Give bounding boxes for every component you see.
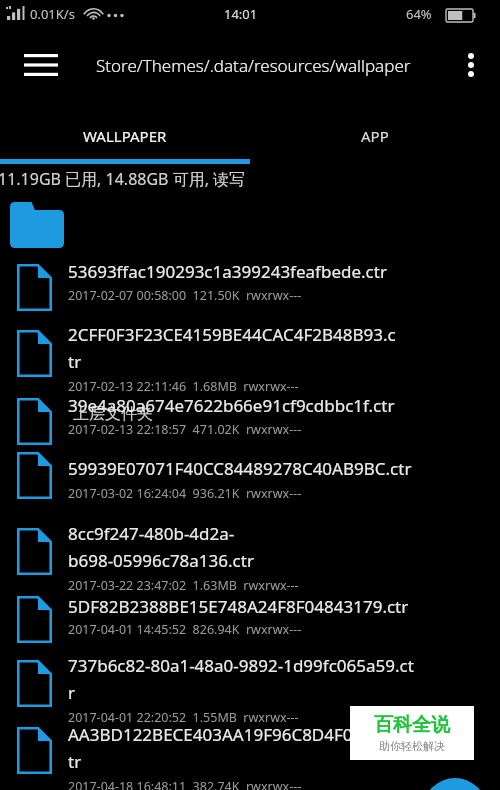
button[interactable]: APP (250, 112, 500, 160)
staticText: 2017-03-02 16:24:04 936.21K rwxrwx--- (68, 485, 302, 502)
staticText: 2017-03-22 23:47:02 1.63MB rwxrwx--- (68, 577, 299, 594)
staticText: 2017-04-18 16:48:11 382.74K rwxrwx--- (68, 778, 302, 790)
staticText: 2017-04-01 22:20:52 1.55MB rwxrwx--- (68, 709, 299, 726)
button[interactable]: Add (423, 778, 487, 790)
staticText: 助你轻松解决 (379, 739, 445, 753)
staticText: tr (68, 350, 82, 373)
staticText: 59939E07071F40CC84489278C40AB9BC.ctr (68, 457, 412, 480)
staticText: 11.19GB 已用, 14.88GB 可用, 读写 (0, 168, 246, 190)
staticText: b698-05996c78a136.ctr (68, 549, 254, 572)
button[interactable]: .. (0, 190, 500, 252)
staticText: 53693ffac190293c1a399243feafbede.ctr (68, 260, 387, 283)
staticText: .. (73, 392, 80, 410)
staticText: WALLPAPER (83, 126, 167, 146)
button[interactable] (0, 392, 500, 446)
staticText: 百科全说 (374, 713, 450, 737)
button[interactable]: Store/Themes/.data/resources/wallpaper (96, 44, 446, 86)
staticText: 64% (406, 5, 432, 23)
staticText: 上层文件夹 (73, 404, 153, 424)
staticText: tr (68, 750, 82, 773)
button[interactable]: Open navigation drawer (10, 42, 72, 88)
button[interactable] (0, 590, 500, 644)
staticText: 14:01 (224, 5, 258, 23)
staticText: 0.01K/s (30, 5, 75, 23)
staticText: 5DF82B2388BE15E748A24F8F04843179.ctr (68, 595, 409, 618)
button[interactable] (0, 654, 500, 708)
button[interactable] (0, 258, 500, 312)
button[interactable]: More options (448, 42, 494, 88)
staticText: AA3BD122BECE403AA19F96C8D4F0D4E7.c (68, 723, 407, 746)
staticText: 2CFF0F3F23CE4159BE44CAC4F2B48B93.c (68, 323, 396, 346)
staticText: 39e4a80a674e7622b66e91cf9cdbbc1f.ctr (68, 394, 395, 417)
staticText: 2017-02-07 00:58:00 121.50K rwxrwx--- (68, 287, 302, 304)
staticText: r (68, 681, 76, 704)
staticText: Store/Themes/.data/resources/wallpaper (96, 54, 411, 77)
staticText: 8cc9f247-480b-4d2a- (68, 522, 235, 545)
button[interactable] (0, 446, 500, 500)
button[interactable]: WALLPAPER (0, 112, 250, 160)
staticText: 2017-02-13 22:11:46 1.68MB rwxrwx--- (68, 378, 299, 395)
button[interactable] (0, 324, 500, 378)
staticText: 2017-04-01 14:45:52 826.94K rwxrwx--- (68, 621, 302, 638)
staticText: 2017-02-13 22:18:57 471.02K rwxrwx--- (68, 421, 302, 438)
button[interactable] (0, 522, 500, 576)
button[interactable] (0, 721, 500, 775)
staticText: 737b6c82-80a1-48a0-9892-1d99fc065a59.ct (68, 654, 414, 677)
staticText: APP (361, 126, 389, 146)
